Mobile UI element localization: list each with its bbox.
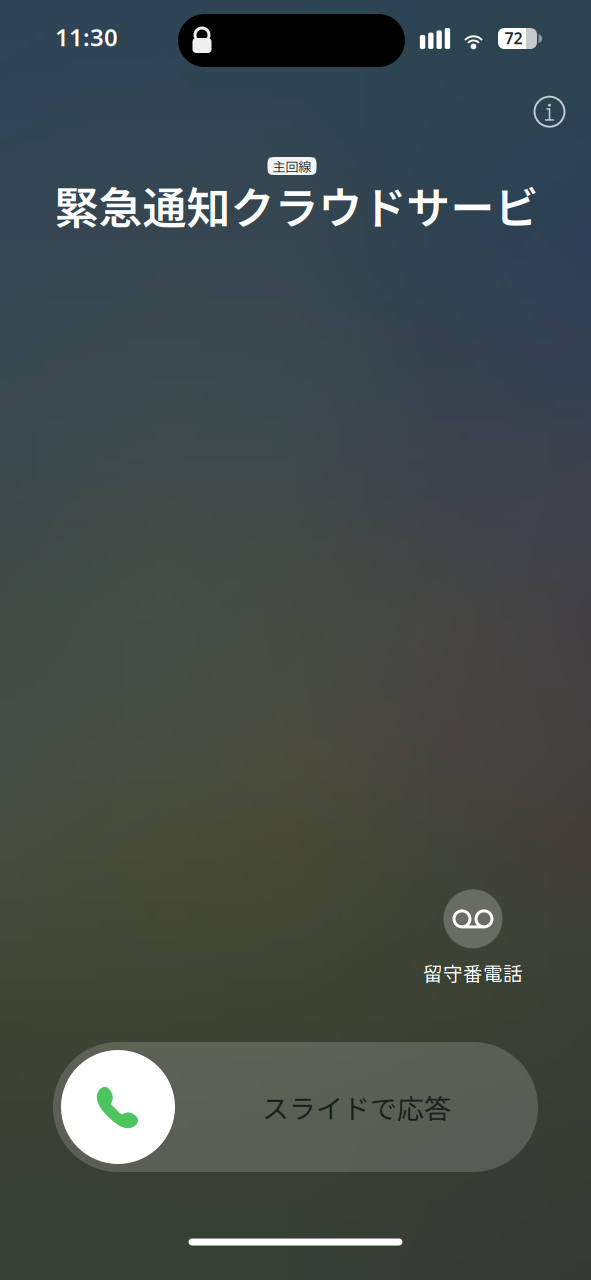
staticText: 72 bbox=[504, 27, 522, 49]
staticText: 留守番電話 bbox=[423, 958, 523, 987]
button[interactable]: Slide to answer bbox=[53, 1042, 538, 1172]
staticText: 緊急通知クラウドサービ bbox=[54, 173, 538, 237]
button[interactable]: Call details bbox=[524, 87, 574, 137]
staticText: 11:30 bbox=[55, 21, 118, 53]
button[interactable]: Voicemail bbox=[398, 888, 548, 988]
staticText: スライドで応答 bbox=[262, 1088, 451, 1126]
staticText: 主回線 bbox=[272, 157, 311, 175]
